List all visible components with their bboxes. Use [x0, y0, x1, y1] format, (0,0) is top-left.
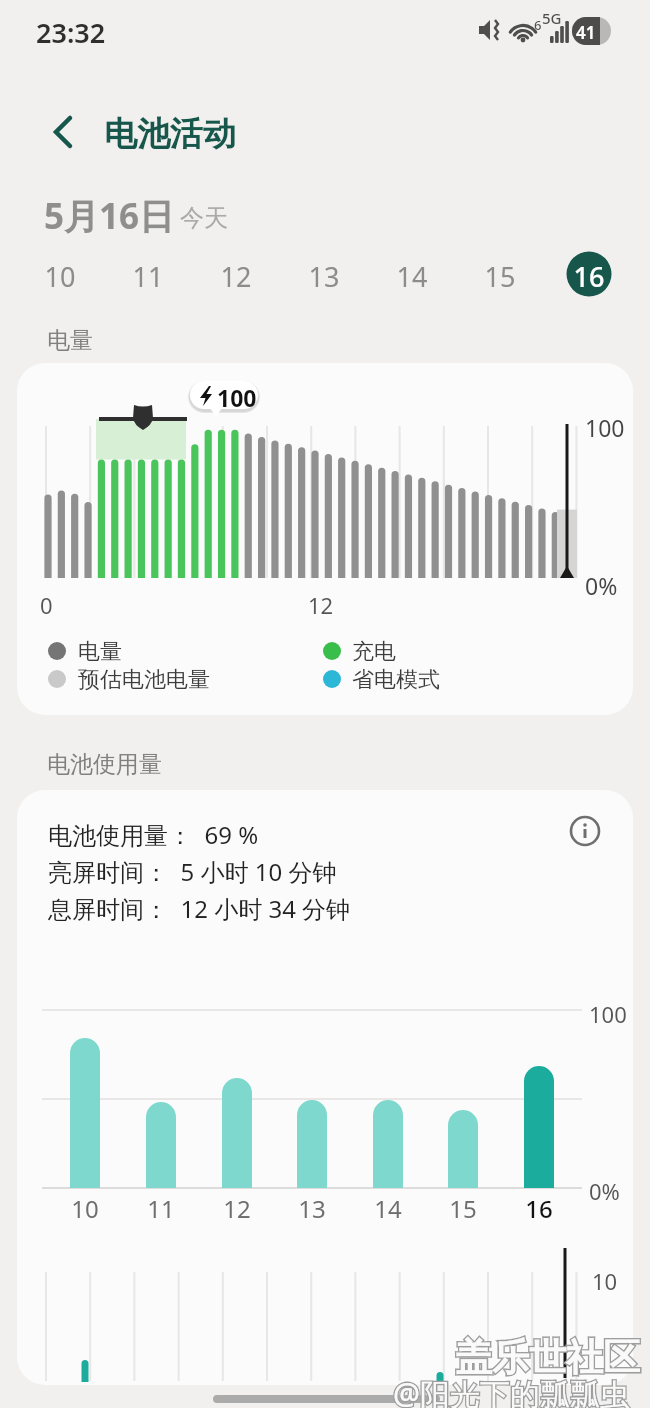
staticText: 电池活动 — [104, 113, 236, 155]
staticText: 预估电池电量 — [78, 666, 210, 694]
staticText: 11 — [131, 1192, 191, 1240]
staticText: 省电模式 — [352, 666, 440, 694]
staticText: 0 — [40, 590, 53, 620]
staticText: 15 — [433, 1192, 493, 1240]
button[interactable]: 14 — [0, 0, 60, 54]
staticText: 14 — [358, 1192, 418, 1240]
button[interactable]: 15 — [0, 0, 60, 54]
staticText: 100 — [585, 412, 625, 443]
staticText: 10 — [592, 1266, 618, 1296]
staticText: 盖乐世社区 — [455, 1334, 640, 1381]
staticText: 亮屏时间： 5 小时 10 分钟 — [48, 855, 337, 888]
staticText: 23:32 — [36, 14, 106, 51]
staticText: 6 — [534, 16, 542, 34]
staticText: 电池使用量 — [47, 750, 162, 779]
staticText: 12 — [207, 1192, 267, 1240]
staticText: 电量 — [78, 638, 122, 666]
staticText: 电量 — [47, 326, 93, 355]
staticText: 0% — [585, 570, 618, 601]
staticText: 盖乐世社区 — [455, 1334, 640, 1381]
staticText: 5G — [542, 8, 562, 28]
staticText: 充电 — [352, 638, 396, 666]
staticText: 息屏时间： 12 小时 34 分钟 — [48, 892, 351, 925]
staticText: 13 — [282, 1192, 342, 1240]
staticText: 10 — [55, 1192, 115, 1240]
staticText: 16 — [509, 1192, 569, 1240]
staticText: 5月16日 — [44, 192, 175, 240]
staticText: 0% — [589, 1176, 620, 1206]
button[interactable] — [40, 105, 90, 160]
staticText: 12 — [308, 590, 334, 620]
button[interactable]: 11 — [0, 0, 60, 54]
staticText: 100 — [589, 999, 627, 1029]
staticText: 今天 — [180, 203, 228, 233]
staticText: 100 — [217, 382, 257, 413]
staticText: @阳光下的瓢瓢虫 — [393, 1373, 630, 1408]
staticText: @阳光下的瓢瓢虫 — [393, 1373, 630, 1408]
staticText: 电池使用量： 69 % — [48, 818, 259, 851]
button[interactable]: 16 — [0, 0, 60, 54]
button[interactable]: 10 — [0, 0, 60, 54]
staticText: 41 — [576, 21, 596, 44]
button[interactable]: 12 — [0, 0, 60, 54]
button[interactable]: 13 — [0, 0, 60, 54]
